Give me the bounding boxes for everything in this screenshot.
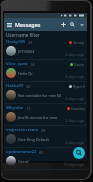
button[interactable]: updatename22 [4,148,87,170]
button[interactable]: New message [59,18,68,31]
staticText: inspection team [6,127,39,133]
staticText: Great! [18,159,64,164]
staticText: Hakka99 [6,83,24,89]
staticText: 11 [26,106,31,111]
staticText: Username filter [6,32,40,38]
staticText: 4 days ago [65,118,85,123]
staticText: 22 [28,40,33,45]
button[interactable]: inspection team [4,126,87,148]
staticText: 65 [39,150,44,155]
button[interactable]: Mhjexbo [4,104,87,126]
button[interactable]: Vitor_xyzw [4,60,87,82]
staticText: Gautika [71,106,85,111]
staticText: Hello Qr [18,71,64,76]
staticText: Vitor_xyzw [6,61,28,67]
staticText: Sunny [73,40,85,45]
staticText: 4 days ago [65,96,85,101]
staticText: Give King Default [18,137,64,142]
staticText: 4 days ago [65,74,85,79]
staticText: 14 [30,62,35,67]
staticText: 40 [26,84,31,89]
button[interactable]: Search [68,18,77,31]
staticText: Gavin [74,62,85,67]
staticText: Ryan S [73,84,85,89]
staticText: 11 days ago [63,162,85,167]
staticText: Not available for new 50 [18,93,64,98]
button[interactable]: Hakka99 [4,82,87,104]
staticText: 28 [41,128,46,133]
staticText: JV795804 [18,49,64,54]
staticText: Jms06 mercal the new [18,115,64,120]
staticText: Ocaky995 [6,39,26,45]
staticText: Messages [15,21,41,28]
button[interactable]: Filter [77,18,86,31]
staticText: updatename22 [6,149,37,155]
button[interactable]: Ocaky995 [4,38,87,60]
button[interactable]: Menu [4,18,15,31]
button[interactable]: Search [73,147,85,159]
staticText: Mhjexbo [6,105,24,111]
staticText: 4 days ago [65,140,85,145]
staticText: 4 days ago [65,52,85,57]
